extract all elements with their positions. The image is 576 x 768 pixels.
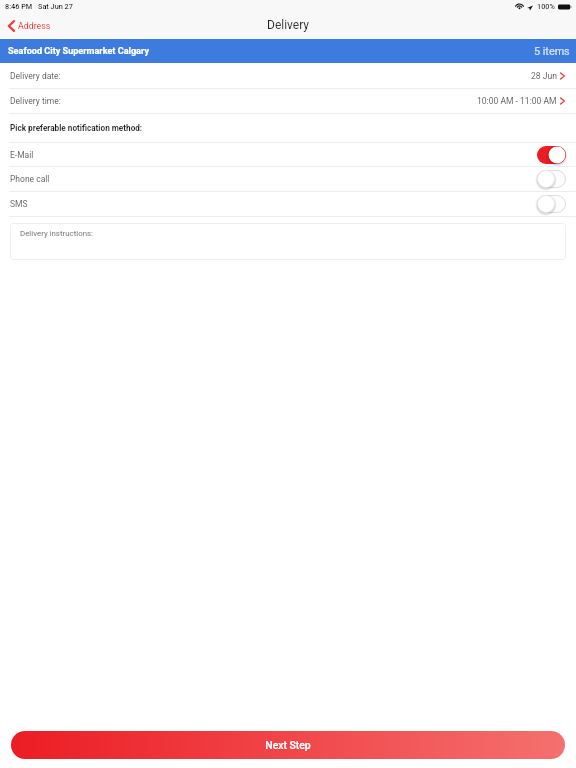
staticText: Delivery date: [10, 71, 61, 81]
button[interactable]: SMS [0, 192, 576, 216]
button[interactable]: Delivery date: [0, 63, 576, 88]
staticText: Sat Jun 27 [38, 2, 73, 11]
staticText: 28 Jun [531, 71, 557, 81]
button[interactable]: Phone call notifications [537, 170, 566, 188]
button[interactable]: SMS notifications [537, 195, 566, 213]
staticText: 10:00 AM - 11:00 AM [477, 96, 557, 106]
staticText: Delivery [267, 18, 310, 32]
button[interactable]: E-Mail notifications [537, 146, 566, 164]
staticText: 100% [537, 2, 555, 11]
staticText: SMS [10, 199, 28, 209]
button[interactable]: Delivery instructions: [10, 223, 566, 260]
button[interactable]: Next Step [11, 731, 565, 759]
button[interactable]: Delivery time: [0, 89, 576, 113]
staticText: Phone call [10, 174, 50, 184]
staticText: Pick preferable notification method: [10, 123, 143, 133]
staticText: E-Mail [10, 150, 34, 160]
staticText: Delivery time: [10, 96, 61, 106]
staticText: 5 items [534, 45, 570, 58]
button[interactable]: E-Mail [0, 143, 576, 166]
staticText: Address [18, 21, 51, 31]
staticText: 8:46 PM [5, 2, 33, 11]
button[interactable]: Phone call [0, 167, 576, 191]
staticText: Delivery instructions: [20, 229, 94, 238]
staticText: Seafood City Supermarket Calgary [8, 46, 149, 57]
button[interactable]: Address [0, 14, 57, 38]
staticText: Next Step [11, 739, 565, 751]
